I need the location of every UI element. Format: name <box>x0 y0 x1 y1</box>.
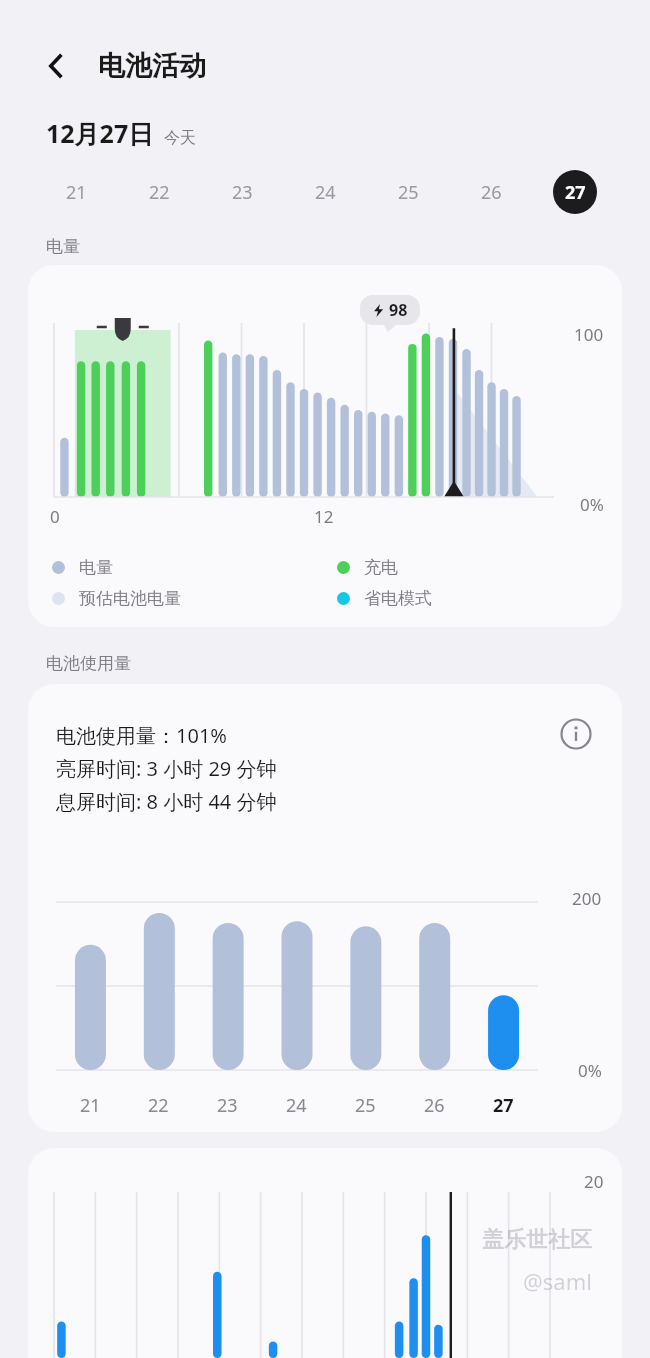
staticText: 25 <box>398 180 419 205</box>
staticText: 26 <box>481 180 502 205</box>
staticText: 盖乐世社区 <box>482 1226 592 1254</box>
staticText: 25 <box>355 1093 376 1118</box>
staticText: 电量 <box>79 557 113 578</box>
staticText: 20 <box>584 1170 604 1193</box>
button[interactable]: 返回 <box>34 44 78 88</box>
staticText: 0% <box>578 1059 602 1082</box>
staticText: 0% <box>580 493 604 516</box>
staticText: 预估电池电量 <box>79 588 181 609</box>
staticText: 今天 <box>164 128 196 148</box>
button[interactable]: 27 <box>533 168 616 216</box>
staticText: 200 <box>572 887 602 910</box>
button[interactable]: 信息 <box>556 714 596 754</box>
staticText: 电池活动 <box>98 49 206 83</box>
button[interactable]: 22 <box>118 168 201 216</box>
staticText: @saml <box>523 1266 592 1296</box>
staticText: 息屏时间: 8 小时 44 分钟 <box>56 788 277 815</box>
staticText: 亮屏时间: 3 小时 29 分钟 <box>56 755 277 782</box>
button[interactable]: 98 <box>28 265 622 627</box>
staticText: 23 <box>217 1093 238 1118</box>
staticText: 21 <box>66 180 87 205</box>
staticText: 12 <box>314 505 334 528</box>
staticText: 电量 <box>46 236 80 257</box>
staticText: 12月27日 <box>46 116 154 150</box>
staticText: 21 <box>80 1093 101 1118</box>
staticText: 电池使用量 <box>46 653 131 674</box>
button[interactable]: 电池使用量：101% <box>28 684 622 1132</box>
staticText: 23 <box>232 180 253 205</box>
staticText: 24 <box>286 1093 307 1118</box>
staticText: 100 <box>574 323 604 346</box>
staticText: 22 <box>149 180 170 205</box>
staticText: 电池使用量：101% <box>56 722 227 749</box>
button[interactable]: 26 <box>450 168 533 216</box>
button[interactable]: 25 <box>367 168 450 216</box>
staticText: 24 <box>315 180 336 205</box>
button[interactable]: 20 <box>28 1148 622 1358</box>
button[interactable]: 24 <box>284 168 367 216</box>
staticText: 省电模式 <box>364 588 432 609</box>
staticText: 0 <box>50 505 60 528</box>
staticText: 26 <box>424 1093 445 1118</box>
staticText: 98 <box>389 299 408 321</box>
button[interactable]: 21 <box>34 168 118 216</box>
button[interactable]: 23 <box>201 168 284 216</box>
staticText: 27 <box>565 180 586 205</box>
staticText: 27 <box>493 1093 514 1118</box>
staticText: 22 <box>148 1093 169 1118</box>
staticText: 充电 <box>364 557 398 578</box>
